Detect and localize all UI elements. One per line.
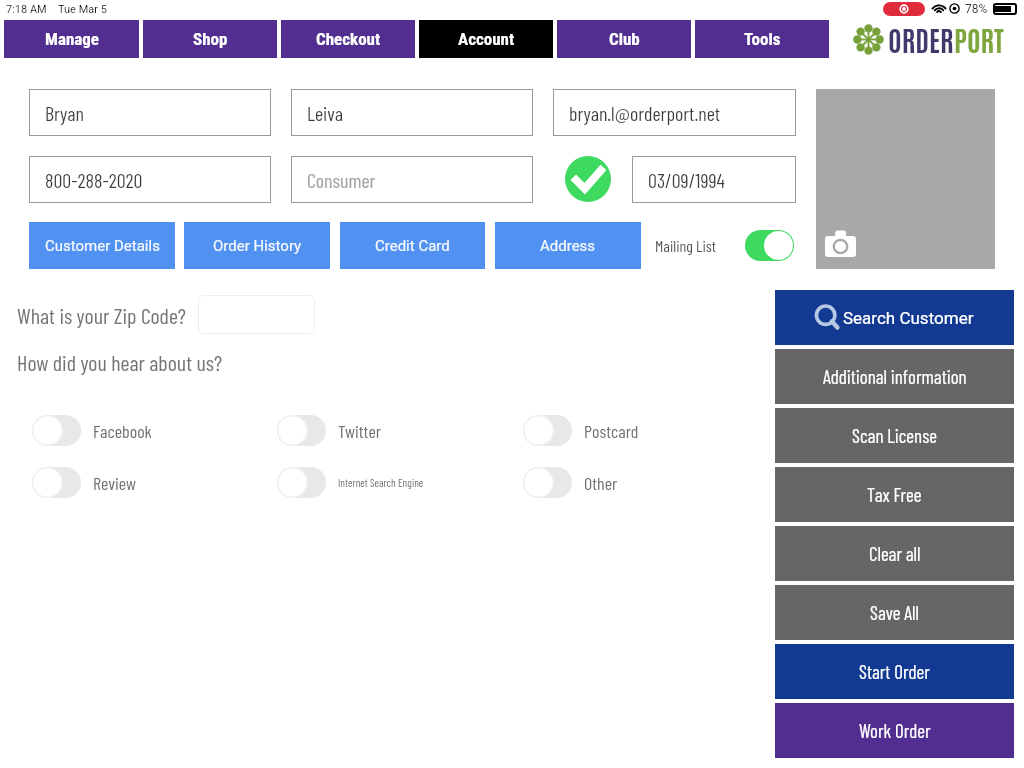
staticText: Start Order bbox=[859, 660, 930, 683]
staticText: ORDER bbox=[888, 21, 954, 57]
staticText: Mailing List bbox=[655, 236, 717, 255]
button[interactable]: Save All bbox=[775, 585, 1014, 640]
staticText: Checkout bbox=[316, 29, 381, 49]
staticText: Customer Details bbox=[45, 237, 160, 255]
button[interactable]: Take photo bbox=[816, 89, 995, 269]
button[interactable]: Address bbox=[495, 222, 641, 269]
staticText: Facebook bbox=[93, 420, 152, 442]
staticText: Other bbox=[584, 472, 618, 494]
staticText: Credit Card bbox=[375, 237, 450, 255]
button[interactable]: Shop bbox=[143, 20, 277, 58]
staticText: Order History bbox=[213, 237, 302, 255]
button[interactable] bbox=[198, 295, 315, 334]
staticText: 800-288-2020 bbox=[45, 168, 143, 192]
button[interactable]: Leiva bbox=[291, 89, 533, 136]
staticText: bryan.l@orderport.net bbox=[569, 101, 721, 125]
staticText: Additional information bbox=[823, 365, 967, 388]
staticText: Consumer bbox=[307, 168, 376, 192]
button[interactable]: Other bbox=[523, 467, 572, 498]
button[interactable]: Consumer bbox=[291, 156, 533, 203]
button[interactable]: Checkout bbox=[281, 20, 415, 58]
staticText: 03/09/1994 bbox=[648, 168, 725, 192]
button[interactable]: Review bbox=[32, 467, 81, 498]
button[interactable]: Facebook bbox=[32, 415, 81, 446]
staticText: Bryan bbox=[45, 101, 85, 125]
button[interactable]: 800-288-2020 bbox=[29, 156, 271, 203]
staticText: Account bbox=[458, 29, 515, 49]
button[interactable]: bryan.l@orderport.net bbox=[553, 89, 796, 136]
staticText: Review bbox=[93, 472, 136, 494]
staticText: Scan License bbox=[852, 424, 937, 447]
button[interactable]: Bryan bbox=[29, 89, 271, 136]
staticText: Club bbox=[609, 29, 640, 49]
button[interactable]: Search Customer bbox=[775, 290, 1014, 345]
staticText: Postcard bbox=[584, 420, 639, 442]
button[interactable]: Tools bbox=[695, 20, 829, 58]
staticText: Internet Search Engine bbox=[338, 476, 424, 489]
button[interactable]: Customer Details bbox=[29, 222, 175, 269]
staticText: Shop bbox=[193, 29, 228, 49]
staticText: Manage bbox=[45, 29, 99, 49]
button[interactable]: Internet Search Engine bbox=[277, 467, 326, 498]
staticText: Tue Mar 5 bbox=[58, 3, 107, 16]
button[interactable]: Tax Free bbox=[775, 467, 1014, 522]
button[interactable]: 03/09/1994 bbox=[632, 156, 796, 203]
staticText: 7:18 AM bbox=[6, 3, 47, 16]
button[interactable]: Account bbox=[419, 20, 553, 58]
button[interactable]: Credit Card bbox=[340, 222, 485, 269]
staticText: Twitter bbox=[338, 420, 381, 442]
staticText: What is your Zip Code? bbox=[17, 302, 186, 328]
staticText: How did you hear about us? bbox=[17, 349, 223, 375]
staticText: PORT bbox=[954, 21, 1004, 57]
staticText: Clear all bbox=[869, 542, 921, 565]
button[interactable]: Twitter bbox=[277, 415, 326, 446]
staticText: 78% bbox=[965, 2, 988, 16]
staticText: Save All bbox=[870, 601, 919, 624]
button[interactable]: Scan License bbox=[775, 408, 1014, 463]
button[interactable]: Additional information bbox=[775, 349, 1014, 404]
staticText: Leiva bbox=[307, 101, 343, 125]
button[interactable]: Order History bbox=[184, 222, 330, 269]
button[interactable]: Manage bbox=[4, 20, 139, 58]
staticText: Tax Free bbox=[867, 483, 922, 506]
button[interactable]: Start Order bbox=[775, 644, 1014, 699]
button[interactable]: Postcard bbox=[523, 415, 572, 446]
staticText: Work Order bbox=[859, 719, 931, 742]
button[interactable]: Work Order bbox=[775, 703, 1014, 758]
button[interactable]: Clear all bbox=[775, 526, 1014, 581]
button[interactable]: Club bbox=[557, 20, 691, 58]
staticText: Search Customer bbox=[843, 308, 974, 328]
button[interactable]: Mailing list toggle bbox=[745, 230, 794, 261]
staticText: Tools bbox=[744, 29, 781, 49]
staticText: Address bbox=[540, 237, 596, 255]
